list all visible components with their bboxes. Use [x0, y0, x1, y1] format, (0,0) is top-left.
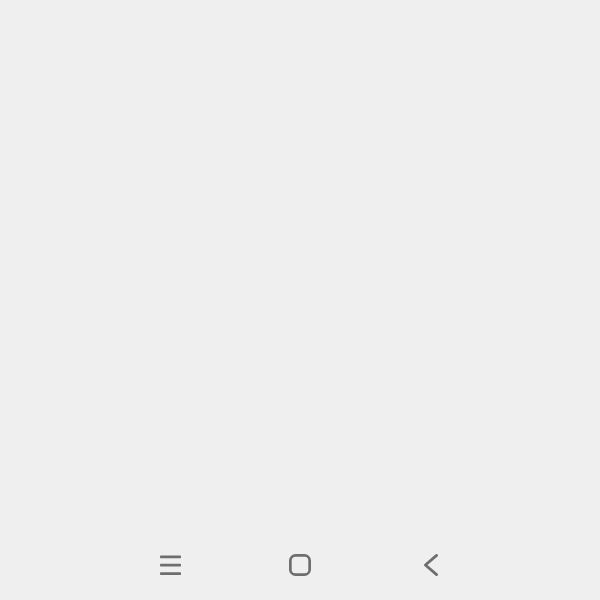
- button[interactable]: Recent apps: [105, 530, 235, 600]
- button[interactable]: Back: [365, 530, 495, 600]
- button[interactable]: Home: [235, 530, 365, 600]
